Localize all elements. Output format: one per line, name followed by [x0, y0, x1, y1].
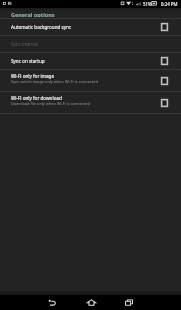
- staticText: Download file only when Wi-Fi is connect…: [11, 101, 90, 106]
- button[interactable]: Wi-Fi only for download: [0, 92, 181, 114]
- staticText: 51%: [143, 1, 152, 7]
- staticText: General options: [11, 11, 55, 17]
- button[interactable]: Wi-Fi only for image: [0, 70, 181, 92]
- button[interactable]: Back: [40, 295, 64, 310]
- staticText: Automatic background sync: [11, 24, 72, 30]
- staticText: 6:24 PM: [161, 1, 178, 7]
- staticText: Sync on startup: [11, 58, 45, 64]
- button[interactable]: Sync on startup: [0, 53, 181, 70]
- button[interactable]: Automatic background sync: [0, 19, 181, 36]
- staticText: Wi-Fi only for download: [11, 95, 62, 101]
- staticText: Sync interval: [11, 41, 39, 47]
- button[interactable]: Recent apps: [117, 295, 141, 310]
- staticText: Sync article image only when Wi-Fi is co…: [11, 79, 98, 84]
- staticText: Wi-Fi only for image: [11, 73, 54, 79]
- button[interactable]: Home: [79, 295, 103, 310]
- button[interactable]: Sync interval: [0, 36, 181, 53]
